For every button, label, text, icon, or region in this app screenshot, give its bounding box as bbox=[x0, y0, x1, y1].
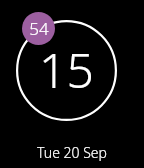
button[interactable]: Tue 20 Sep bbox=[37, 143, 107, 162]
button[interactable]: Time, 15 hours bbox=[16, 20, 117, 121]
staticText: 54 bbox=[29, 17, 49, 40]
staticText: 15 bbox=[39, 37, 94, 102]
staticText: Tue 20 Sep bbox=[37, 143, 107, 162]
button[interactable]: Battery 54 percent bbox=[22, 12, 55, 45]
